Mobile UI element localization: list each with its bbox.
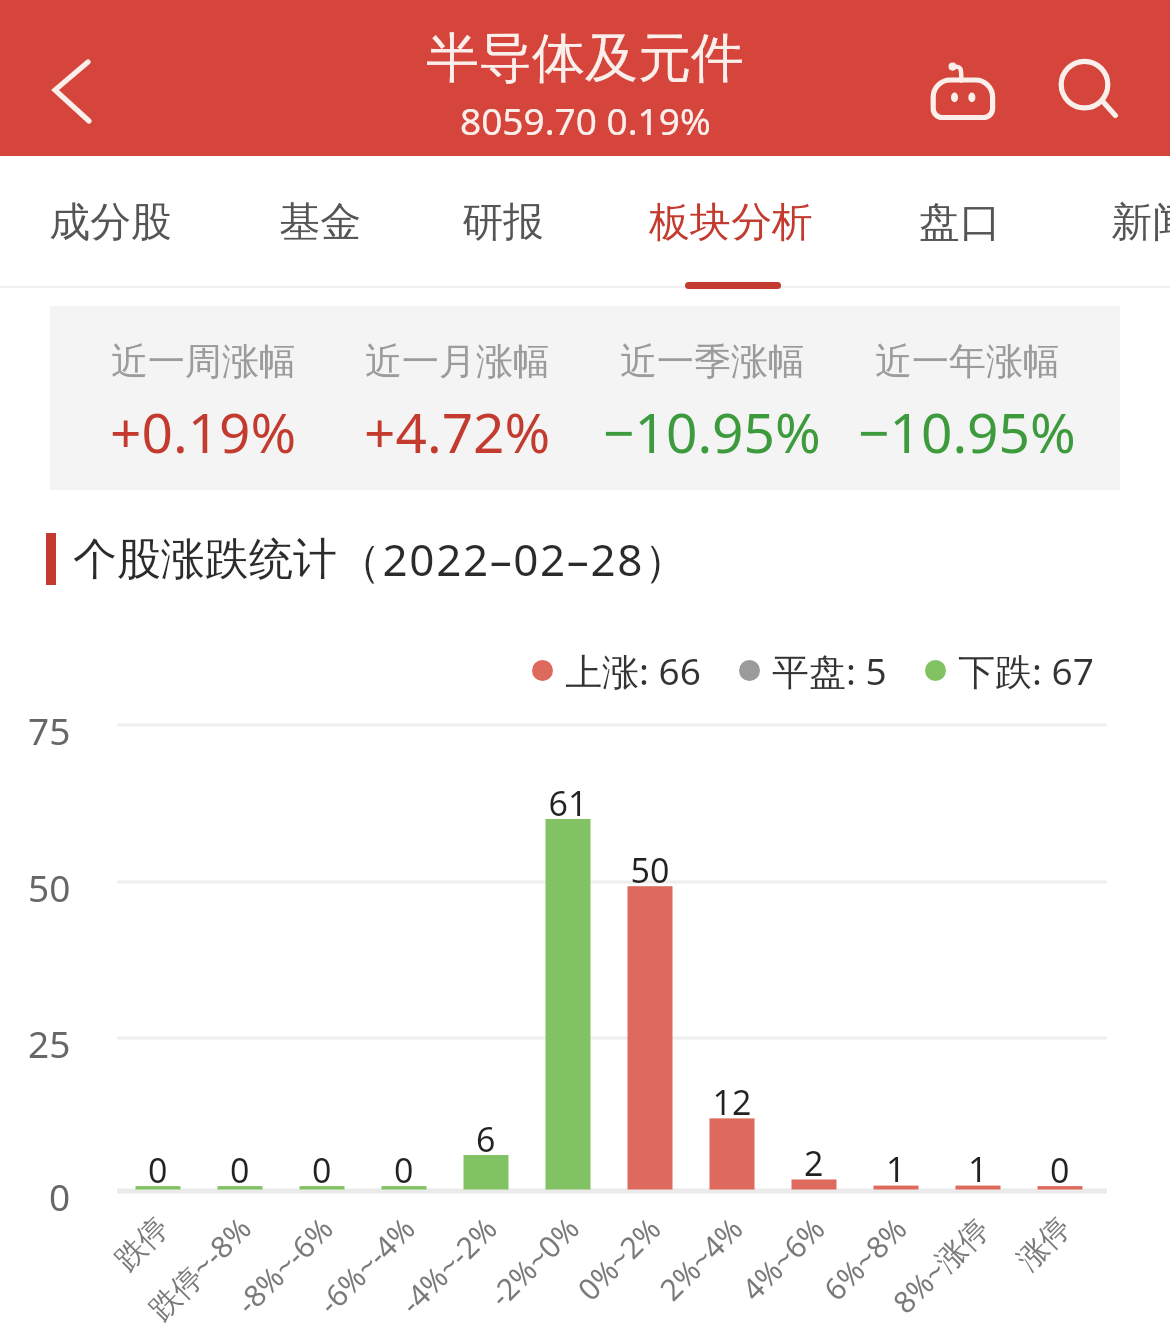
button[interactable]: 板块分析: [637, 178, 825, 268]
staticText: 近一年涨幅: [875, 338, 1060, 385]
button[interactable]: 下跌: 67: [925, 645, 1094, 696]
staticText: 研报: [462, 197, 544, 249]
staticText: +4.72%: [364, 394, 551, 469]
button[interactable]: Back: [10, 36, 100, 126]
staticText: 盘口: [919, 197, 1001, 249]
staticText: 近一周涨幅: [111, 338, 296, 385]
staticText: −10.95%: [858, 394, 1076, 469]
staticText: +0.19%: [110, 394, 297, 469]
staticText: 下跌: 67: [958, 645, 1094, 696]
staticText: 近一季涨幅: [620, 338, 805, 385]
staticText: （2022–02–28）: [337, 529, 690, 589]
button[interactable]: 成分股: [37, 178, 184, 268]
staticText: 8059.70 0.19%: [460, 95, 711, 145]
staticText: 半导体及元件: [426, 25, 744, 92]
button[interactable]: 上涨: 66: [532, 645, 701, 696]
staticText: 近一月涨幅: [365, 338, 550, 385]
staticText: 平盘: 5: [772, 645, 887, 696]
button[interactable]: 研报: [450, 178, 556, 268]
staticText: 基金: [279, 197, 361, 249]
button[interactable]: Search: [1048, 42, 1128, 122]
button[interactable]: 盘口: [907, 178, 1013, 268]
button[interactable]: 新闻: [1099, 178, 1170, 268]
staticText: 个股涨跌统计: [73, 532, 337, 587]
staticText: 成分股: [49, 197, 172, 249]
button[interactable]: AI assistant: [925, 42, 1011, 128]
staticText: 板块分析: [649, 197, 813, 249]
button[interactable]: 基金: [267, 178, 373, 268]
staticText: −10.95%: [603, 394, 821, 469]
button[interactable]: 平盘: 5: [739, 645, 887, 696]
staticText: 新闻: [1111, 197, 1170, 249]
staticText: 上涨: 66: [565, 645, 701, 696]
